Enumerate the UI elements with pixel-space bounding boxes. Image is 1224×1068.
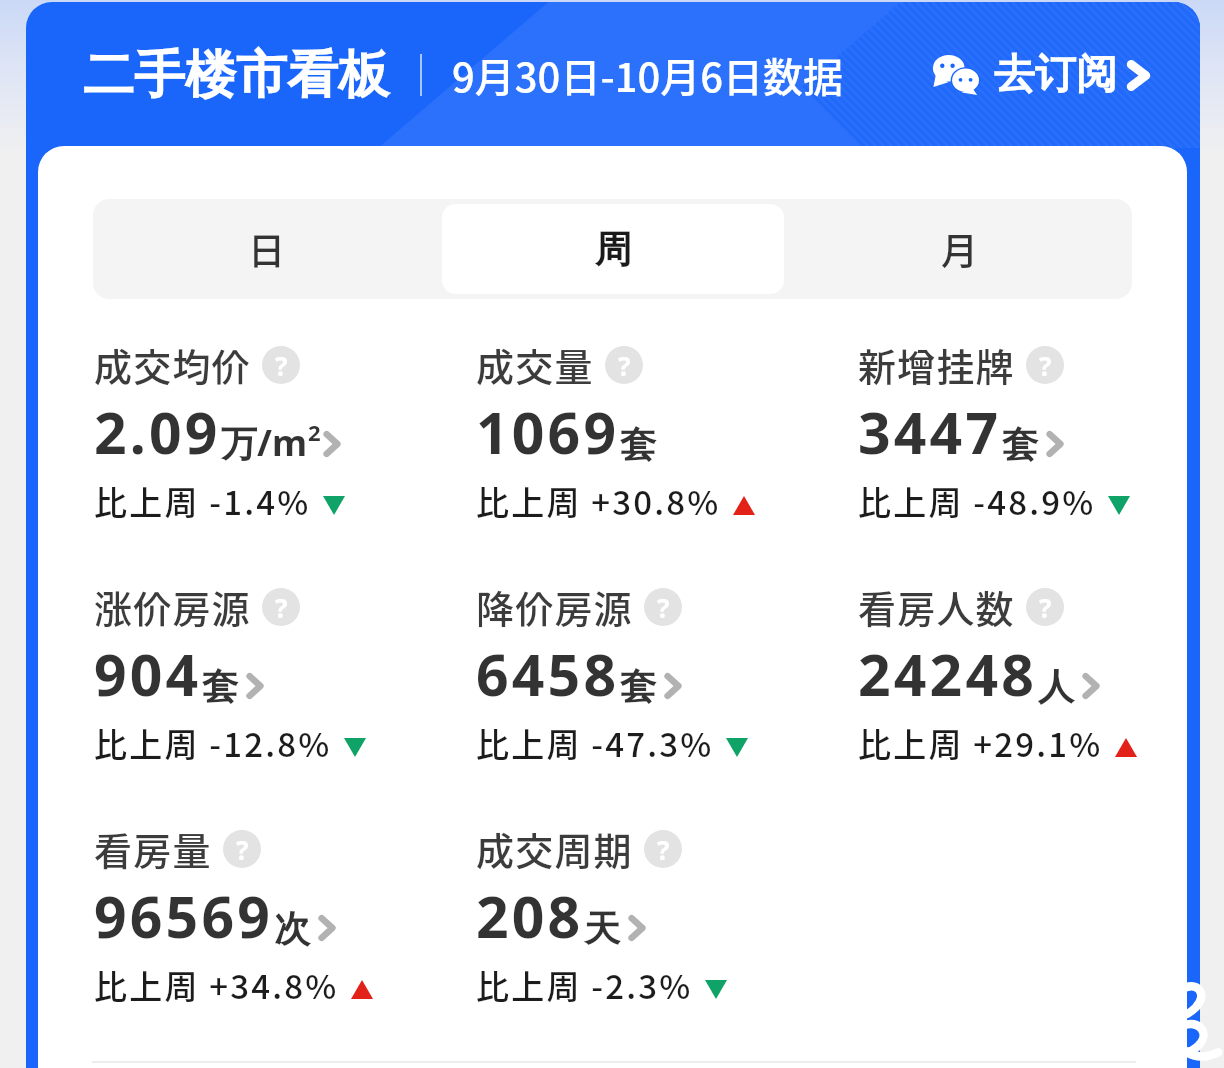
button[interactable]: 看房人数 <box>858 575 1187 817</box>
staticText: 904 <box>94 635 202 713</box>
staticText: 涨价房源 <box>94 579 251 634</box>
staticText: 成交均价 <box>94 337 251 392</box>
button[interactable]: 成交量 <box>476 333 858 575</box>
staticText: 万/m <box>221 418 308 467</box>
staticText: 次 <box>274 906 310 951</box>
staticText: ? <box>275 590 288 625</box>
staticText: 1069 <box>476 393 620 471</box>
staticText: 9月30日-10月6日数据 <box>452 46 844 104</box>
staticText: ? <box>657 832 670 867</box>
button[interactable]: 微信 <box>931 49 1148 101</box>
staticText: 比上周 -47.3% <box>476 719 714 767</box>
staticText: 天 <box>584 906 620 951</box>
button[interactable]: 指标说明 <box>1026 588 1064 626</box>
button[interactable]: 指标说明 <box>605 346 643 384</box>
button[interactable]: 指标说明 <box>1026 346 1064 384</box>
staticText: 比上周 +34.8% <box>94 961 339 1009</box>
staticText: 比上周 -12.8% <box>94 719 332 767</box>
staticText: 日 <box>248 222 285 276</box>
staticText: 24248 <box>858 635 1038 713</box>
button[interactable]: 指标说明 <box>262 346 300 384</box>
staticText: 成交量 <box>476 337 594 392</box>
staticText: 人 <box>1038 664 1074 709</box>
staticText: 比上周 -48.9% <box>858 477 1096 525</box>
staticText: ? <box>618 348 631 383</box>
staticText: 周 <box>595 226 632 273</box>
staticText: ? <box>1039 348 1052 383</box>
staticText: 二手楼市看板 <box>83 43 389 107</box>
other: 微信 <box>931 55 979 95</box>
staticText: 6458 <box>476 635 620 713</box>
staticText: 比上周 -1.4% <box>94 477 311 525</box>
staticText: 比上周 -2.3% <box>476 961 693 1009</box>
staticText: 月 <box>941 222 978 276</box>
button[interactable]: 指标说明 <box>644 830 682 868</box>
staticText: 新增挂牌 <box>858 337 1015 392</box>
staticText: ? <box>236 832 249 867</box>
button[interactable]: 指标说明 <box>262 588 300 626</box>
staticText: 套 <box>1002 422 1038 467</box>
button[interactable]: 指标说明 <box>644 588 682 626</box>
button[interactable]: 降价房源 <box>476 575 858 817</box>
button[interactable]: 新增挂牌 <box>858 333 1187 575</box>
button[interactable]: 指标说明 <box>223 830 261 868</box>
staticText: 成交周期 <box>476 821 633 876</box>
staticText: 套 <box>620 664 656 709</box>
staticText: ? <box>1039 590 1052 625</box>
staticText: 比上周 +30.8% <box>476 477 721 525</box>
staticText: 套 <box>202 664 238 709</box>
staticText: ? <box>657 590 670 625</box>
button[interactable]: 月 <box>788 204 1130 294</box>
button[interactable]: 日 <box>95 204 438 294</box>
button[interactable]: 看房量 <box>94 817 476 1059</box>
button[interactable]: 成交均价 <box>94 333 476 575</box>
staticText: ? <box>275 348 288 383</box>
staticText: 208 <box>476 877 584 955</box>
staticText: 去订阅 <box>994 49 1117 101</box>
staticText: 看房人数 <box>858 579 1015 634</box>
staticText: 2.09 <box>94 393 221 471</box>
staticText: 看房量 <box>94 821 212 876</box>
button[interactable]: 周 <box>442 204 784 294</box>
button[interactable]: 涨价房源 <box>94 575 476 817</box>
staticText: 套 <box>620 422 656 467</box>
staticText: 3447 <box>858 393 1002 471</box>
staticText: 比上周 +29.1% <box>858 719 1103 767</box>
button[interactable]: 成交周期 <box>476 817 858 1059</box>
staticText: 96569 <box>94 877 274 955</box>
staticText: 降价房源 <box>476 579 633 634</box>
staticText: 2 <box>308 417 321 447</box>
